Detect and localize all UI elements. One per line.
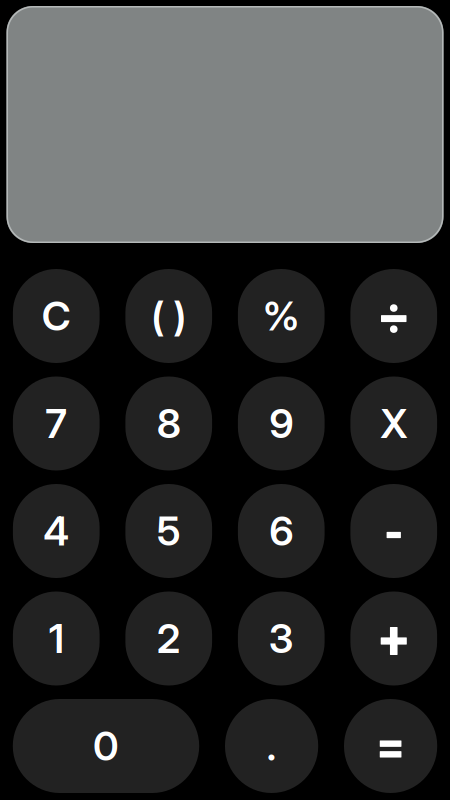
button[interactable]: 9: [238, 376, 325, 470]
button[interactable]: Divide: [350, 269, 437, 363]
button[interactable]: 0: [13, 699, 199, 793]
staticText: ( ): [151, 292, 186, 340]
staticText: 4: [43, 507, 69, 555]
button[interactable]: 3: [238, 591, 325, 685]
staticText: %: [263, 292, 300, 340]
staticText: 6: [269, 507, 293, 555]
staticText: 5: [157, 507, 181, 555]
button[interactable]: Plus: [350, 591, 437, 685]
button[interactable]: Equals: [344, 699, 437, 793]
button[interactable]: .: [225, 699, 318, 793]
button[interactable]: C: [13, 269, 100, 363]
button[interactable]: X: [350, 376, 437, 470]
staticText: 3: [269, 614, 294, 663]
button[interactable]: ( ): [125, 269, 212, 363]
button[interactable]: 8: [125, 376, 212, 470]
staticText: 1: [49, 614, 64, 663]
button[interactable]: 5: [125, 484, 212, 578]
button[interactable]: 4: [13, 484, 100, 578]
button[interactable]: 2: [125, 591, 212, 685]
staticText: .: [267, 722, 277, 770]
staticText: 8: [157, 399, 181, 448]
staticText: 7: [45, 399, 67, 448]
staticText: X: [380, 399, 407, 448]
button[interactable]: Minus: [350, 484, 437, 578]
button[interactable]: 7: [13, 376, 100, 470]
staticText: 0: [93, 722, 119, 770]
button[interactable]: 6: [238, 484, 325, 578]
staticText: 9: [269, 399, 293, 448]
staticText: C: [42, 292, 71, 340]
staticText: 2: [157, 614, 181, 663]
button[interactable]: 1: [13, 591, 100, 685]
button[interactable]: %: [238, 269, 325, 363]
